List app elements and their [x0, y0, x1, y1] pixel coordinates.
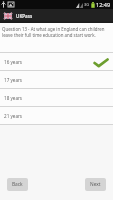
staticText: 18 years	[4, 95, 23, 101]
staticText: UKPass	[16, 13, 33, 19]
staticText: 16 years	[4, 59, 23, 65]
button[interactable]: 18 years	[0, 88, 113, 106]
staticText: Question 13 - At what age in England can…	[2, 26, 111, 38]
staticText: Next	[90, 181, 101, 188]
staticText: 12:49	[96, 1, 111, 8]
button[interactable]: 17 years	[0, 70, 113, 88]
button[interactable]: 21 years	[0, 106, 113, 124]
staticText: 17 years	[4, 77, 23, 83]
staticText: Back	[12, 181, 23, 188]
button[interactable]: 16 years	[0, 52, 113, 70]
staticText: 21 years	[4, 113, 23, 119]
staticText: 3G	[84, 2, 90, 7]
button[interactable]: Back	[7, 178, 28, 191]
button[interactable]: Next	[85, 178, 106, 191]
